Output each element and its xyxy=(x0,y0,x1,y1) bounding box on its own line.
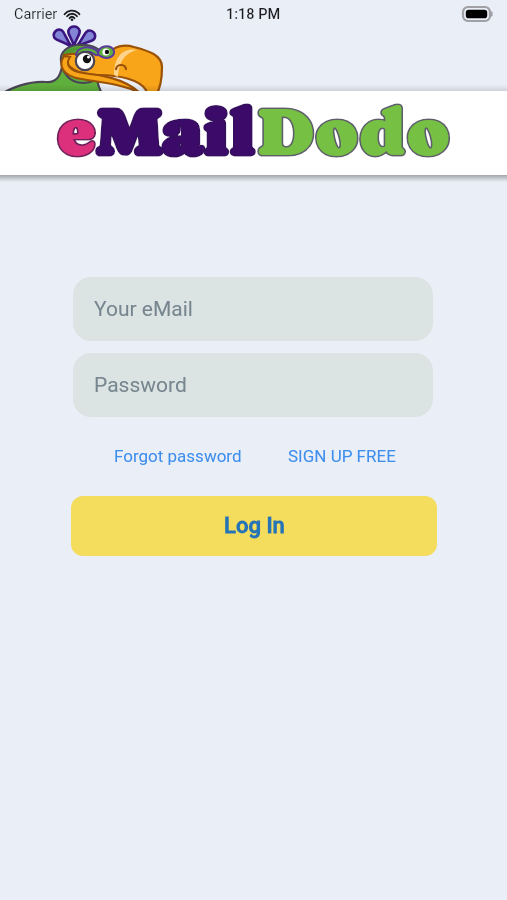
staticText: Forgot password xyxy=(114,446,242,466)
staticText: Dodo xyxy=(256,93,451,171)
staticText: e xyxy=(57,93,97,171)
staticText: Your eMail xyxy=(94,297,193,322)
button[interactable]: Forgot password xyxy=(110,441,246,471)
staticText: SIGN UP FREE xyxy=(288,446,396,466)
staticText: Mail xyxy=(97,93,256,171)
button[interactable]: Your eMail xyxy=(73,277,433,341)
staticText: 1:18 PM xyxy=(226,6,281,23)
staticText: Password xyxy=(94,373,187,398)
button[interactable]: Log In xyxy=(71,496,437,556)
staticText: e xyxy=(57,93,97,171)
button[interactable]: SIGN UP FREE xyxy=(284,441,400,471)
staticText: Mail xyxy=(97,93,256,171)
staticText: Carrier xyxy=(14,6,58,23)
button[interactable]: Password xyxy=(73,353,433,417)
staticText: Log In xyxy=(224,513,285,539)
staticText: Dodo xyxy=(256,93,451,171)
